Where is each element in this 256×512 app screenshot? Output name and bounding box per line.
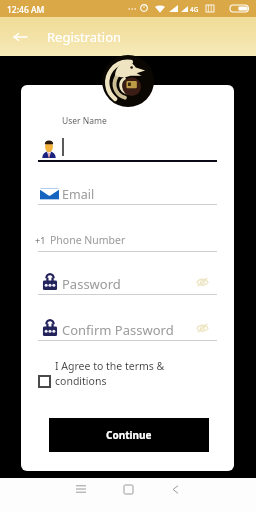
staticText: +1 <box>35 234 46 246</box>
staticText: Confirm Password <box>62 321 174 339</box>
staticText: I Agree to the terms & conditions <box>55 359 165 388</box>
button[interactable]: Back <box>163 477 187 501</box>
staticText: Phone Number <box>50 233 126 247</box>
staticText: Continue <box>106 428 152 442</box>
staticText: 4G <box>190 5 199 14</box>
staticText: 12:46 AM <box>7 4 45 16</box>
button[interactable]: I Agree to the terms & conditions <box>38 359 217 391</box>
button[interactable]: Show confirm password <box>196 322 209 334</box>
button[interactable]: Back <box>8 25 32 49</box>
staticText: Email <box>62 186 95 203</box>
staticText: Registration <box>47 28 122 46</box>
button[interactable]: Show password <box>196 276 209 288</box>
button[interactable]: Recent apps <box>69 477 93 501</box>
button[interactable]: Home <box>116 477 140 501</box>
button[interactable]: Continue <box>49 418 209 452</box>
staticText: User Name <box>62 115 107 127</box>
staticText: Password <box>62 275 121 293</box>
